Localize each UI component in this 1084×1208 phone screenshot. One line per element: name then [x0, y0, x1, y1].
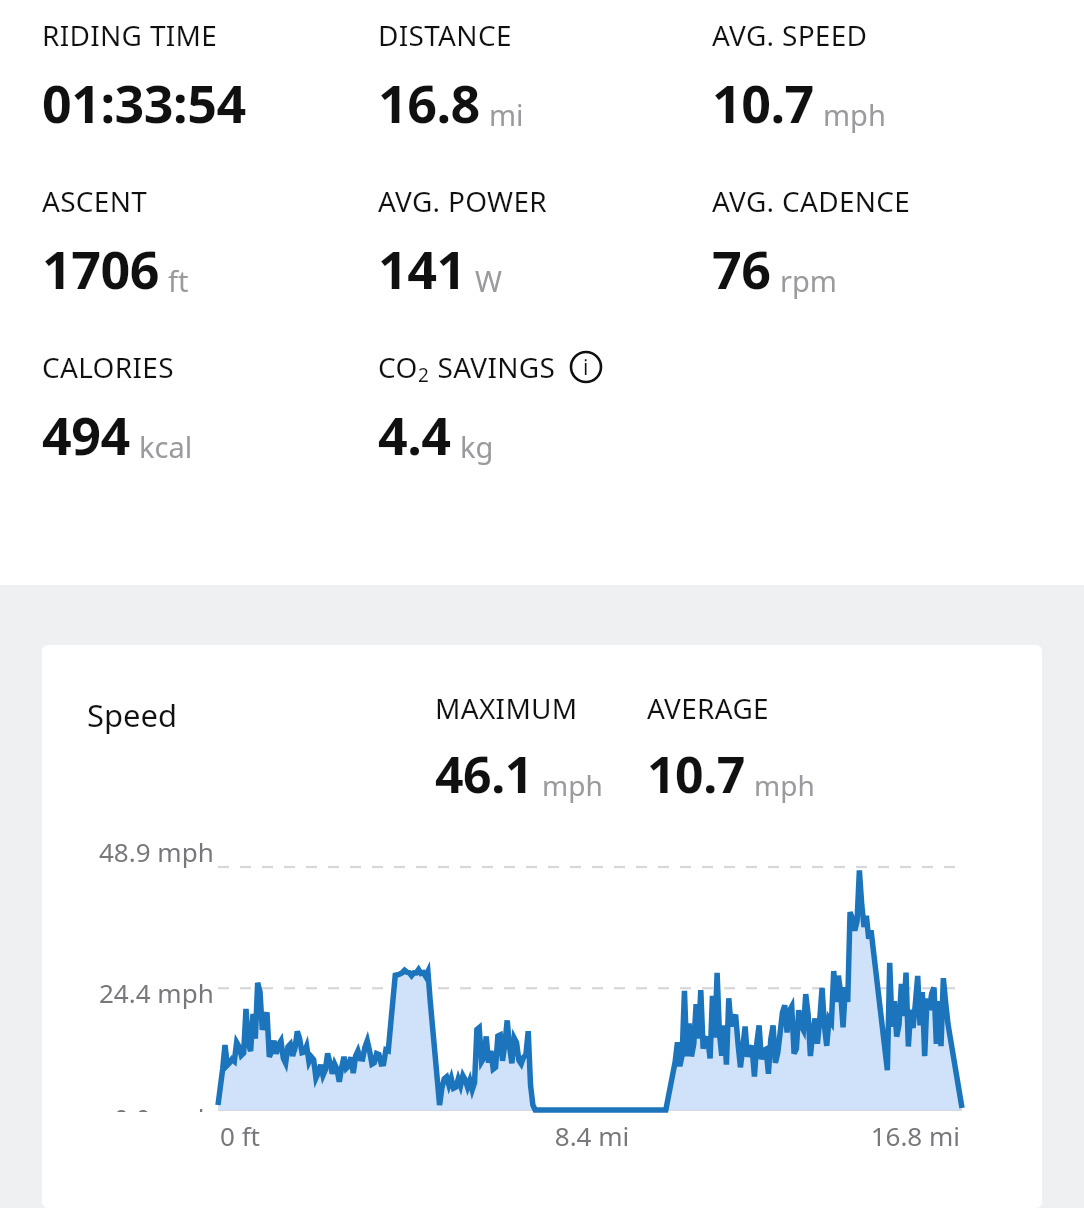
staticText: SAVINGS: [430, 348, 556, 386]
staticText: CO: [378, 348, 418, 386]
button[interactable]: DISTANCE: [378, 16, 712, 138]
staticText: Speed: [87, 694, 178, 736]
staticText: 2: [418, 362, 430, 388]
button[interactable]: CO: [378, 348, 798, 470]
staticText: 46.1: [435, 740, 533, 808]
staticText: 494: [42, 399, 130, 470]
button[interactable]: CALORIES: [42, 348, 378, 470]
button[interactable]: AVG. POWER: [378, 182, 712, 304]
staticText: 4.4: [378, 399, 451, 470]
staticText: RIDING TIME: [42, 16, 218, 54]
button[interactable]: RIDING TIME: [42, 16, 378, 138]
staticText: mi: [489, 95, 524, 134]
staticText: mph: [542, 766, 603, 804]
staticText: 1706: [42, 233, 159, 304]
staticText: 0 ft: [220, 1118, 468, 1153]
button[interactable]: Speed: [42, 645, 1042, 1208]
staticText: MAXIMUM: [435, 689, 578, 727]
staticText: AVERAGE: [647, 689, 769, 727]
staticText: CALORIES: [42, 348, 174, 386]
staticText: DISTANCE: [378, 16, 512, 54]
staticText: 10.7: [712, 67, 814, 138]
staticText: ft: [168, 261, 189, 300]
button[interactable]: AVG. SPEED: [712, 16, 1042, 138]
staticText: kg: [460, 427, 494, 466]
staticText: 141: [378, 233, 466, 304]
staticText: i: [583, 353, 589, 382]
staticText: kcal: [139, 427, 193, 466]
staticText: 01:33:54: [42, 67, 246, 138]
staticText: 16.8: [378, 67, 480, 138]
button[interactable]: ASCENT: [42, 182, 378, 304]
staticText: 0.0 mph: [114, 1100, 214, 1112]
staticText: mph: [754, 766, 815, 804]
staticText: 10.7: [647, 740, 745, 808]
staticText: rpm: [780, 261, 837, 300]
staticText: 24.4 mph: [99, 975, 214, 1010]
staticText: 16.8 mi: [716, 1118, 960, 1153]
button[interactable]: AVG. CADENCE: [712, 182, 1042, 304]
staticText: ASCENT: [42, 182, 148, 220]
staticText: AVG. POWER: [378, 182, 548, 220]
staticText: 8.4 mi: [468, 1118, 716, 1153]
staticText: 76: [712, 233, 771, 304]
button[interactable]: About CO2 savings: [568, 349, 604, 385]
staticText: mph: [823, 95, 886, 134]
staticText: AVG. CADENCE: [712, 182, 911, 220]
staticText: 48.9 mph: [99, 834, 214, 869]
staticText: AVG. SPEED: [712, 16, 868, 54]
staticText: W: [475, 261, 502, 300]
